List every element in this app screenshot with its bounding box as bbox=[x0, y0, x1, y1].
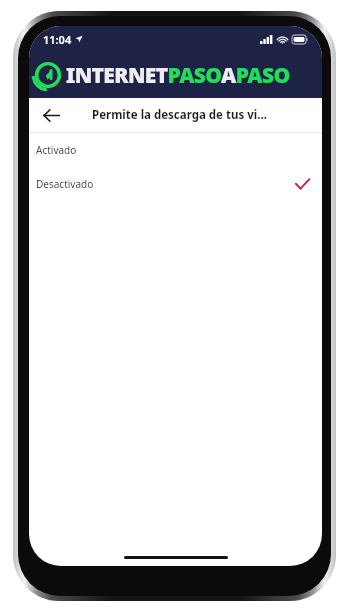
button[interactable]: Back bbox=[35, 99, 67, 131]
staticText: 11:04 bbox=[43, 32, 72, 47]
staticText: Permite la descarga de tus vi... bbox=[92, 107, 267, 123]
button[interactable]: Desactivado bbox=[29, 167, 322, 201]
staticText: Desactivado bbox=[36, 177, 94, 191]
staticText: INTERNETPASOAPASO bbox=[66, 61, 290, 90]
staticText: Activado bbox=[36, 143, 77, 157]
button[interactable]: Activado bbox=[29, 133, 322, 167]
